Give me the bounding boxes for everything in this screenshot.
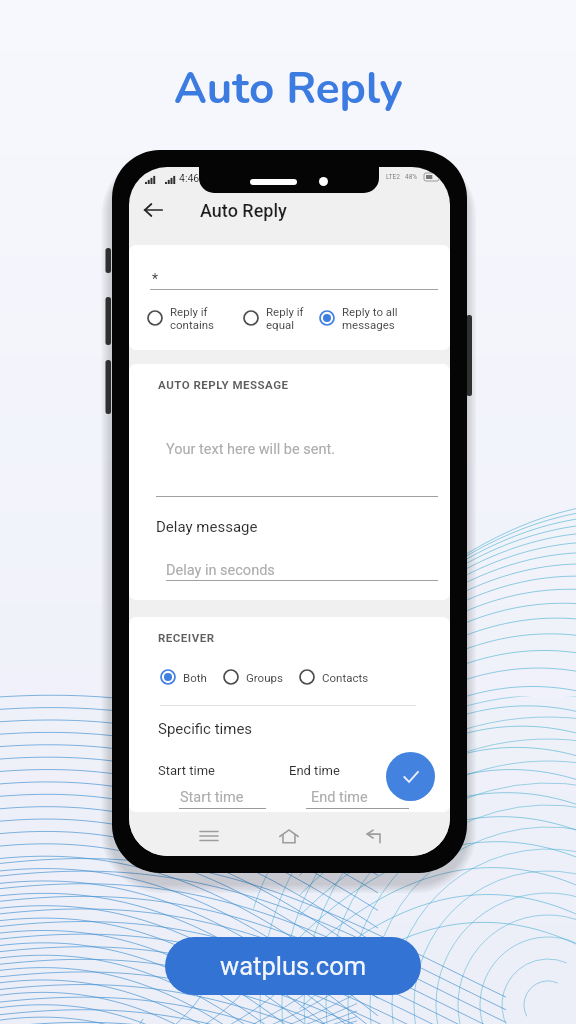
button[interactable]: Recents [189,816,229,856]
staticText: AUTO REPLY MESSAGE [158,378,289,391]
staticText: * [152,271,159,287]
staticText: Delay message [156,518,258,536]
staticText: 48% [405,173,418,181]
staticText: Groups [246,671,283,684]
staticText: 4:46 [179,172,200,184]
staticText: Auto Reply [200,200,287,221]
staticText: LTE2 [386,173,400,181]
staticText: Your text here will be sent. [166,441,335,458]
staticText: End time [311,789,368,806]
button[interactable]: Both [160,669,207,685]
staticText: RECEIVER [158,631,215,644]
staticText: watplus.com [220,951,367,981]
staticText: Reply if equal [266,305,304,331]
staticText: Reply to all messages [342,305,398,331]
button[interactable]: Reply to all messages [319,305,429,331]
button[interactable]: Contacts [299,669,369,685]
button[interactable]: Save [386,752,435,801]
button[interactable]: Back [129,189,177,231]
staticText: Reply if contains [170,305,215,331]
button[interactable]: watplus.com [165,937,421,995]
staticText: Specific times [158,720,253,738]
button[interactable]: Reply if contains [147,305,243,331]
staticText: Contacts [322,671,369,684]
staticText: Start time [158,763,215,778]
button[interactable]: Groups [223,669,283,685]
button[interactable]: Back [353,816,393,856]
staticText: Start time [180,789,244,806]
staticText: Auto Reply [174,59,403,119]
staticText: Delay in seconds [166,562,275,579]
staticText: End time [289,763,340,778]
button[interactable]: Reply if equal [243,305,319,331]
button[interactable]: Home [269,816,309,856]
staticText: Both [183,671,207,684]
